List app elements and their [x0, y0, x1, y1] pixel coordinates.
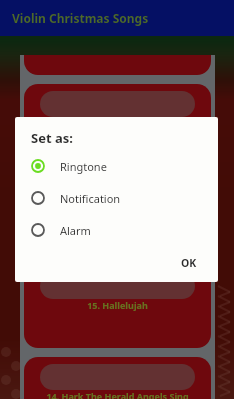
staticText: 14. Hark The Herald Angels Sing — [46, 390, 189, 399]
staticText: Alarm — [60, 223, 91, 238]
staticText: Notification — [60, 191, 121, 206]
button[interactable]: 17. O Holy Night — [20, 55, 215, 79]
staticText: Ringtone — [60, 159, 107, 174]
button[interactable] — [20, 170, 215, 261]
button[interactable]: 16. Silent Night — [20, 79, 215, 170]
button[interactable]: Ringtone — [15, 150, 218, 182]
button[interactable]: Alarm — [15, 214, 218, 246]
button[interactable]: 15. Hallelujah — [20, 261, 215, 352]
button[interactable]: 14. Hark The Herald Angels Sing — [20, 352, 215, 399]
staticText: 15. Hallelujah — [87, 299, 148, 311]
button[interactable]: Notification — [15, 182, 218, 214]
button[interactable]: OK — [175, 253, 203, 273]
staticText: OK — [181, 256, 197, 270]
staticText: Violin Christmas Songs — [12, 10, 149, 26]
staticText: Set as: — [31, 129, 73, 147]
